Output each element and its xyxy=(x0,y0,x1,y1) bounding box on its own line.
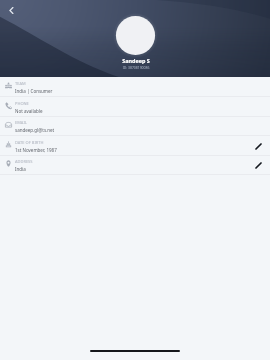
staticText: DATE OF BIRTH xyxy=(15,140,44,145)
staticText: India xyxy=(15,166,26,172)
staticText: ID: 38708190086 xyxy=(1,65,270,70)
staticText: 1st November, 1987 xyxy=(15,147,57,153)
staticText: Sandeep S xyxy=(1,57,270,64)
staticText: PHONE xyxy=(15,101,29,106)
button[interactable]: Edit DATE OF BIRTH xyxy=(252,140,265,153)
button[interactable]: Edit ADDRESS xyxy=(252,159,265,172)
button[interactable]: TEAM xyxy=(0,77,270,97)
staticText: TEAM xyxy=(15,81,26,86)
button[interactable]: EMAIL xyxy=(0,116,270,136)
button[interactable]: ADDRESS xyxy=(0,155,270,175)
staticText: India | Consumer xyxy=(15,88,53,94)
staticText: sandeep.gl@ts.net xyxy=(15,127,55,133)
button[interactable]: PHONE xyxy=(0,97,270,117)
button[interactable]: DATE OF BIRTH xyxy=(0,136,270,156)
staticText: EMAIL xyxy=(15,120,27,125)
button[interactable]: Back xyxy=(2,1,20,19)
staticText: ADDRESS xyxy=(15,159,33,164)
button[interactable]: Profile photo xyxy=(113,13,158,58)
staticText: Not available xyxy=(15,108,43,114)
